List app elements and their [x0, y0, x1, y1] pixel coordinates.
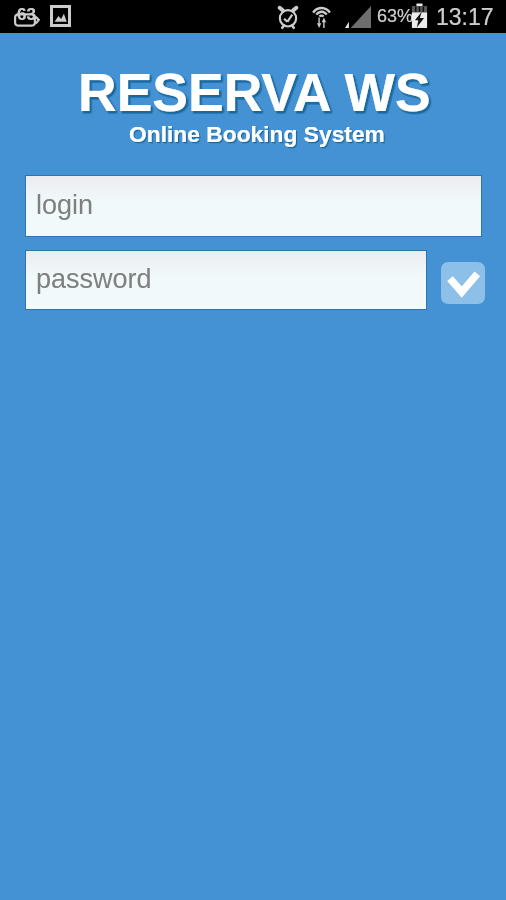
staticText: 63	[17, 5, 36, 24]
button[interactable]: password	[26, 251, 426, 309]
staticText: RESERVA WS	[79, 66, 432, 126]
staticText: 13:17	[436, 4, 494, 30]
staticText: RESERVA WS	[78, 63, 431, 123]
staticText: password	[36, 264, 152, 294]
staticText: RESERVA WS	[81, 64, 434, 124]
button[interactable]: login	[26, 176, 481, 236]
other: Screenshot	[14, 10, 39, 29]
staticText: RESERVA WS	[81, 66, 434, 126]
staticText: Online Booking System	[130, 122, 386, 147]
staticText: Online Booking System	[130, 122, 386, 147]
staticText: Online Booking System	[131, 123, 387, 148]
staticText: login	[36, 190, 94, 220]
staticText: Online Booking System	[130, 122, 386, 147]
staticText: 63%	[377, 6, 414, 26]
staticText: RESERVA WS	[80, 65, 433, 125]
staticText: Online Booking System	[129, 121, 385, 146]
button[interactable]: Submit login	[441, 262, 485, 304]
other: Image	[50, 5, 71, 27]
